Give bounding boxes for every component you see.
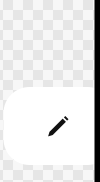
button[interactable]: Compose <box>3 87 100 165</box>
